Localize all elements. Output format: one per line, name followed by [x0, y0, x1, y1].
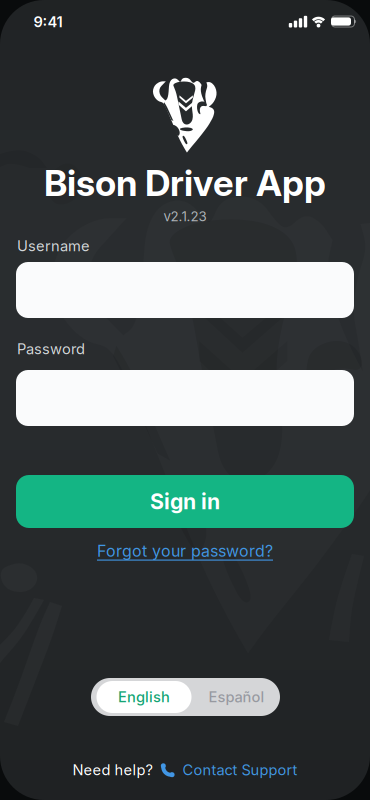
button[interactable]: English — [96, 678, 191, 716]
staticText: v2.1.23 — [163, 209, 206, 224]
button[interactable]: Contact Support — [159, 761, 297, 779]
staticText: Need help? — [72, 761, 152, 779]
staticText: Sign in — [150, 489, 220, 514]
button[interactable]: Username — [16, 262, 354, 318]
staticText: Bison Driver App — [44, 162, 326, 204]
staticText: English — [118, 688, 170, 706]
staticText: Username — [17, 237, 90, 255]
button[interactable]: Sign in — [16, 475, 354, 528]
staticText: Español — [208, 688, 264, 706]
staticText: Contact Support — [182, 761, 297, 779]
staticText: Forgot your password? — [97, 542, 273, 560]
button[interactable]: Español — [192, 678, 280, 716]
staticText: Password — [17, 340, 85, 358]
button[interactable]: Forgot your password? — [97, 542, 273, 560]
staticText: 9:41 — [33, 13, 62, 31]
button[interactable]: Password — [16, 370, 354, 426]
